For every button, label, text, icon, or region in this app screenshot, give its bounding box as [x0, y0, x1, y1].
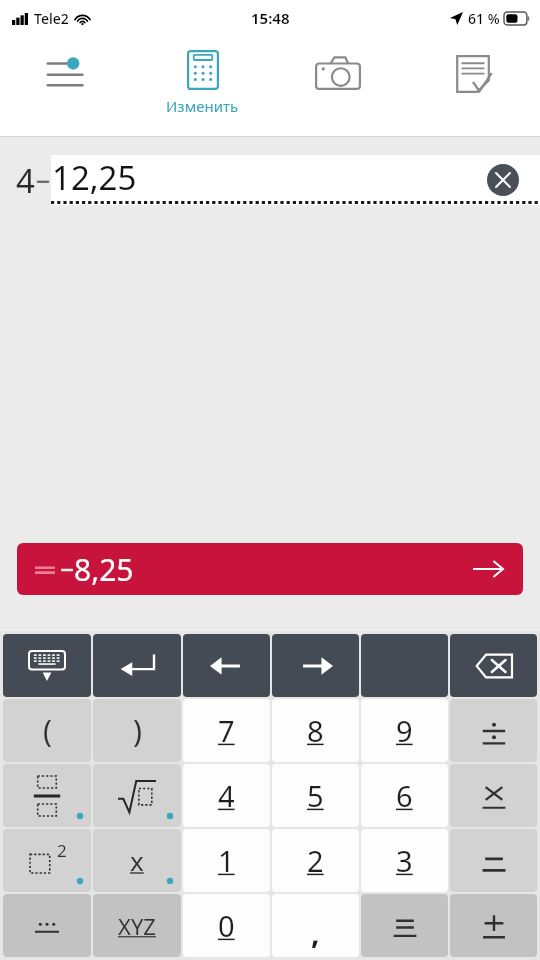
- button[interactable]: [450, 764, 537, 827]
- button[interactable]: [361, 894, 448, 957]
- staticText: x: [130, 843, 144, 878]
- button[interactable]: Settings: [0, 36, 135, 137]
- button[interactable]: [3, 764, 91, 827]
- button[interactable]: [450, 894, 537, 957]
- button[interactable]: 6: [361, 764, 448, 827]
- staticText: Изменить: [166, 96, 239, 116]
- button[interactable]: Tasks: [405, 36, 540, 137]
- button[interactable]: 8,25: [17, 543, 523, 595]
- staticText: ): [133, 710, 142, 751]
- staticText: 4: [218, 776, 235, 815]
- button[interactable]: Move left: [183, 634, 270, 697]
- button[interactable]: XYZ: [93, 894, 181, 957]
- button[interactable]: Move right: [272, 634, 359, 697]
- staticText: XYZ: [118, 911, 156, 941]
- staticText: 7: [218, 711, 235, 750]
- button[interactable]: ): [93, 699, 181, 762]
- button[interactable]: [450, 829, 537, 892]
- button[interactable]: 2: [3, 829, 91, 892]
- button[interactable]: Enter: [93, 634, 181, 697]
- button[interactable]: 3: [361, 829, 448, 892]
- button[interactable]: 4: [183, 764, 270, 827]
- staticText: 4: [16, 158, 35, 203]
- button[interactable]: Blank: [361, 634, 448, 697]
- staticText: 8,25: [74, 549, 134, 590]
- button[interactable]: 0: [183, 894, 270, 957]
- staticText: 6: [396, 776, 413, 815]
- button[interactable]: [93, 764, 181, 827]
- staticText: (: [43, 710, 52, 751]
- staticText: 12,25: [52, 155, 137, 200]
- button[interactable]: x: [93, 829, 181, 892]
- staticText: 5: [307, 776, 324, 815]
- staticText: ,: [311, 912, 320, 953]
- button[interactable]: Clear: [487, 164, 519, 196]
- button[interactable]: Hide keyboard: [3, 634, 91, 697]
- staticText: 2: [307, 841, 324, 880]
- button[interactable]: 8: [272, 699, 359, 762]
- button[interactable]: Backspace: [450, 634, 537, 697]
- button[interactable]: 5: [272, 764, 359, 827]
- button[interactable]: Изменить: [135, 36, 270, 137]
- button[interactable]: Camera: [270, 36, 405, 137]
- staticText: 15:48: [251, 8, 290, 28]
- button[interactable]: [3, 894, 91, 957]
- button[interactable]: 9: [361, 699, 448, 762]
- staticText: 2: [57, 839, 67, 862]
- staticText: 61 %: [468, 9, 500, 28]
- button[interactable]: ,: [272, 894, 359, 957]
- button[interactable]: [450, 699, 537, 762]
- button[interactable]: 7: [183, 699, 270, 762]
- staticText: Tele2: [34, 9, 69, 28]
- staticText: 8: [307, 711, 324, 750]
- staticText: 1: [218, 841, 235, 880]
- staticText: 9: [396, 711, 413, 750]
- button[interactable]: 1: [183, 829, 270, 892]
- staticText: 3: [396, 841, 413, 880]
- staticText: 0: [218, 906, 235, 945]
- button[interactable]: 2: [272, 829, 359, 892]
- button[interactable]: (: [3, 699, 91, 762]
